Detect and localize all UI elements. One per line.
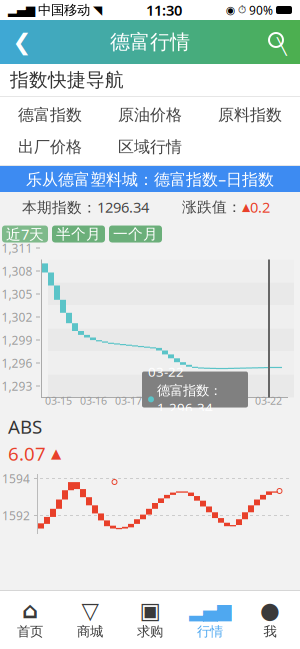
staticText: 1,305 bbox=[1, 286, 32, 302]
staticText: 03-17 bbox=[115, 393, 142, 408]
staticText: 6.07 bbox=[8, 441, 46, 466]
button[interactable]: 近7天 bbox=[2, 225, 48, 242]
button[interactable]: Search bbox=[256, 20, 300, 64]
button[interactable]: 出厂价格 bbox=[0, 131, 100, 163]
button[interactable]: ● bbox=[240, 591, 300, 649]
staticText: ▂▄▆ bbox=[8, 3, 35, 17]
staticText: 03-16 bbox=[80, 393, 107, 408]
button[interactable]: 德富指数 bbox=[0, 99, 100, 131]
staticText: 1,293 bbox=[1, 378, 32, 394]
staticText: ABS bbox=[8, 414, 42, 439]
staticText: 原料指数 bbox=[218, 105, 282, 125]
staticText: 区域行情 bbox=[118, 137, 182, 157]
staticText: 德富指数 bbox=[18, 105, 82, 125]
staticText: 1594 bbox=[2, 470, 30, 486]
button[interactable]: Back bbox=[0, 20, 44, 64]
button[interactable]: 一个月 bbox=[109, 225, 162, 242]
staticText: ⌂ bbox=[22, 597, 38, 623]
staticText: 03-22 bbox=[148, 363, 184, 380]
staticText: 首页 bbox=[17, 623, 43, 640]
staticText: 半个月 bbox=[56, 225, 101, 243]
staticText: 原油价格 bbox=[118, 105, 182, 125]
staticText: ● bbox=[260, 597, 280, 623]
staticText: 03-21 bbox=[220, 393, 247, 408]
staticText: 0.2 bbox=[250, 197, 270, 217]
staticText: 03-15 bbox=[45, 393, 72, 408]
button[interactable]: ▣ bbox=[120, 591, 180, 649]
staticText: 商城 bbox=[77, 623, 103, 640]
staticText: 1592 bbox=[2, 507, 30, 523]
staticText: 求购 bbox=[137, 623, 163, 640]
staticText: 行情 bbox=[197, 623, 223, 640]
staticText: ❮ bbox=[12, 29, 31, 55]
button[interactable]: 区域行情 bbox=[100, 131, 200, 163]
staticText: ▣ bbox=[139, 597, 160, 623]
staticText: 一个月 bbox=[113, 225, 158, 243]
staticText: 1,296 bbox=[1, 355, 32, 371]
staticText: 03-22 bbox=[255, 393, 282, 408]
staticText: ⏱ bbox=[238, 5, 246, 15]
staticText: 11:30 bbox=[146, 0, 182, 20]
staticText: 乐从德富塑料城：德富指数–日指数 bbox=[26, 168, 274, 190]
staticText: ▂▄▆ bbox=[189, 600, 231, 621]
staticText: 涨跌值： bbox=[182, 198, 242, 216]
button[interactable]: 原油价格 bbox=[100, 99, 200, 131]
staticText: ▽ bbox=[81, 597, 98, 623]
staticText: 本期指数：1296.34 bbox=[22, 197, 149, 217]
staticText: 出厂价格 bbox=[18, 137, 82, 157]
staticText: ▲ bbox=[51, 446, 61, 461]
staticText: 近7天 bbox=[6, 224, 44, 244]
staticText: 1,299 bbox=[1, 332, 32, 348]
button[interactable]: ▂▄▆ bbox=[180, 591, 240, 649]
staticText: 1,302 bbox=[1, 309, 32, 325]
staticText: 德富行情 bbox=[110, 30, 190, 54]
staticText: 指数快捷导航 bbox=[10, 68, 124, 91]
staticText: ◉ bbox=[226, 4, 235, 16]
staticText: 03-19 bbox=[185, 393, 212, 408]
staticText: 1,308 bbox=[1, 263, 32, 279]
button[interactable]: 原料指数 bbox=[200, 99, 300, 131]
button[interactable]: ⌂ bbox=[0, 591, 60, 649]
staticText: 1,311 bbox=[1, 240, 32, 256]
staticText: ╲ bbox=[277, 37, 287, 56]
staticText: 90% bbox=[249, 2, 273, 18]
staticText: ◥ bbox=[93, 3, 102, 17]
staticText: ▲ bbox=[242, 201, 250, 213]
staticText: 我 bbox=[263, 623, 276, 640]
button[interactable]: 半个月 bbox=[52, 225, 105, 242]
staticText: 03-18 bbox=[150, 393, 177, 408]
button[interactable]: ▽ bbox=[60, 591, 120, 649]
staticText: 中国移动 bbox=[38, 2, 90, 18]
staticText: 德富指数：1,296.34 bbox=[157, 382, 222, 416]
